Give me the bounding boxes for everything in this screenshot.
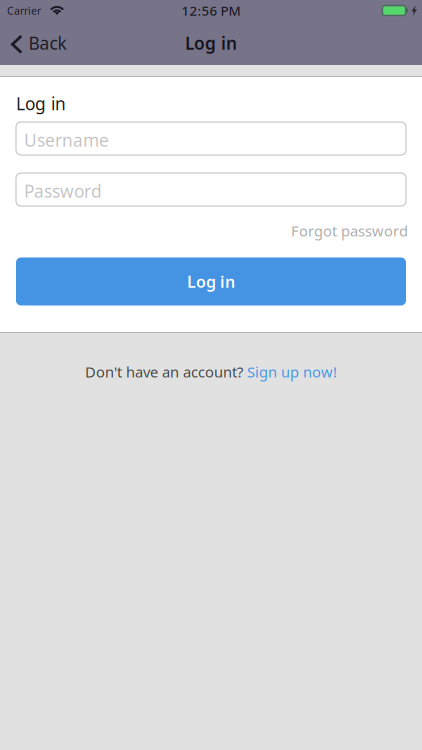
staticText: Forgot password xyxy=(291,221,408,240)
button[interactable]: Log in xyxy=(16,257,406,305)
button[interactable]: Forgot password xyxy=(0,206,422,240)
button[interactable]: Back xyxy=(0,21,77,65)
staticText: Password xyxy=(24,179,102,202)
staticText: 12:56 PM xyxy=(181,2,240,19)
staticText: Log in xyxy=(185,31,237,54)
staticText: Username xyxy=(24,128,109,151)
button[interactable]: Sign up now! xyxy=(247,362,337,381)
button[interactable]: Username xyxy=(16,122,406,155)
staticText: Don't have an account? xyxy=(85,362,247,381)
staticText: Back xyxy=(29,31,67,54)
staticText: Sign up now! xyxy=(247,362,337,381)
button[interactable]: Password xyxy=(16,173,406,206)
staticText: Log in xyxy=(187,271,235,292)
staticText: Log in xyxy=(16,92,66,115)
staticText: Carrier xyxy=(7,3,41,18)
